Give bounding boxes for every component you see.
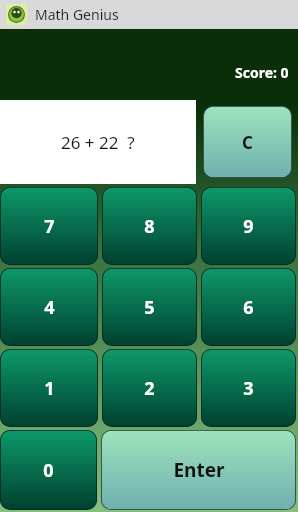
staticText: Score: 0 xyxy=(235,63,289,82)
staticText: 6 xyxy=(243,295,254,320)
button[interactable]: 2 xyxy=(102,349,197,427)
button[interactable]: 8 xyxy=(102,187,197,265)
button[interactable]: Enter xyxy=(101,430,296,510)
staticText: 8 xyxy=(144,214,155,239)
button[interactable]: 4 xyxy=(0,268,98,346)
staticText: C xyxy=(242,131,253,154)
staticText: Enter xyxy=(173,457,225,483)
button[interactable]: 5 xyxy=(102,268,197,346)
button[interactable]: 9 xyxy=(201,187,296,265)
staticText: 9 xyxy=(243,214,254,239)
staticText: Math Genius xyxy=(35,5,119,24)
staticText: 2 xyxy=(144,376,155,401)
staticText: 3 xyxy=(243,376,254,401)
staticText: 0 xyxy=(43,458,54,483)
staticText: 4 xyxy=(44,295,55,320)
staticText: 7 xyxy=(44,214,55,239)
staticText: 1 xyxy=(44,376,55,401)
button[interactable]: 3 xyxy=(201,349,296,427)
button[interactable]: 1 xyxy=(0,349,98,427)
staticText: 26 + 22 ? xyxy=(61,131,135,154)
button[interactable]: C xyxy=(203,106,292,178)
button[interactable]: 0 xyxy=(0,430,97,510)
staticText: 5 xyxy=(144,295,155,320)
button[interactable]: 6 xyxy=(201,268,296,346)
button[interactable]: 7 xyxy=(0,187,98,265)
